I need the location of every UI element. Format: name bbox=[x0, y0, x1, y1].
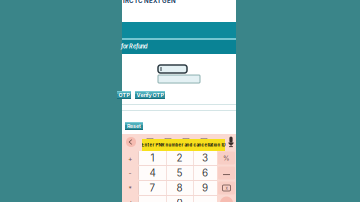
button[interactable]: Backspace bbox=[217, 181, 236, 195]
staticText: 7 bbox=[149, 182, 155, 194]
button[interactable]: Enter bbox=[217, 196, 236, 202]
button[interactable]: Clipboard bbox=[145, 137, 155, 147]
button[interactable]: 8 bbox=[166, 181, 193, 195]
button[interactable]: 2 bbox=[166, 151, 193, 165]
staticText: * bbox=[128, 184, 131, 193]
staticText: % bbox=[223, 154, 230, 162]
button[interactable]: 6 bbox=[193, 166, 217, 180]
staticText: + bbox=[128, 154, 132, 163]
button[interactable]: OTP bbox=[117, 91, 131, 99]
staticText: - bbox=[128, 169, 131, 178]
button[interactable]: 7 bbox=[139, 181, 166, 195]
button[interactable]: Space bbox=[217, 166, 236, 180]
staticText: / bbox=[129, 199, 131, 202]
staticText: IRCTC NEXT GEN bbox=[123, 0, 176, 4]
button[interactable]: = bbox=[193, 196, 217, 202]
button[interactable]: 3 bbox=[193, 151, 217, 165]
staticText: 0 bbox=[176, 197, 182, 202]
button[interactable]: Reset bbox=[125, 122, 143, 130]
staticText: for Refund bbox=[121, 43, 148, 50]
staticText: 2 bbox=[176, 152, 182, 164]
staticText: 1 bbox=[150, 152, 154, 164]
staticText: 8 bbox=[176, 182, 182, 194]
staticText: 3 bbox=[202, 152, 208, 164]
staticText: Verify OTP bbox=[136, 92, 163, 98]
staticText: 4 bbox=[149, 167, 155, 179]
button[interactable]: 4 bbox=[139, 166, 166, 180]
button[interactable]: % bbox=[217, 151, 236, 165]
button[interactable]: Verify OTP bbox=[135, 91, 165, 99]
staticText: Enter PNR number and cancellation ID bbox=[141, 142, 225, 148]
button[interactable]: GIF bbox=[163, 137, 173, 147]
button[interactable]: Settings bbox=[199, 137, 209, 147]
button[interactable]: 1 bbox=[139, 151, 166, 165]
button[interactable]: / bbox=[122, 196, 138, 202]
button[interactable]: - bbox=[122, 166, 138, 181]
button[interactable]: 0 bbox=[166, 196, 193, 202]
button[interactable]: Stickers bbox=[181, 137, 191, 147]
button[interactable]: + bbox=[122, 151, 138, 166]
staticText: 5 bbox=[176, 167, 182, 179]
button[interactable]: Voice input bbox=[227, 136, 235, 148]
button[interactable]: Back bbox=[126, 137, 136, 147]
staticText: 6 bbox=[202, 167, 208, 179]
staticText: x bbox=[225, 185, 227, 191]
staticText: Reset bbox=[127, 123, 141, 129]
staticText: 9 bbox=[202, 182, 208, 194]
button[interactable]: 9 bbox=[193, 181, 217, 195]
button[interactable]: * bbox=[122, 181, 138, 196]
staticText: OTP bbox=[118, 92, 129, 98]
button[interactable]: 5 bbox=[166, 166, 193, 180]
